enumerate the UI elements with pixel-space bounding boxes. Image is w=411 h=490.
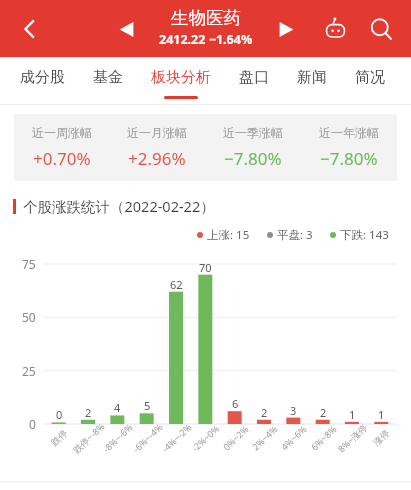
staticText: 近一月涨幅	[127, 125, 187, 140]
staticText: 近一季涨幅	[223, 125, 283, 140]
button[interactable]: 近一月涨幅	[109, 125, 205, 170]
button[interactable]: 成分股	[20, 57, 65, 105]
button[interactable]: 近一周涨幅	[14, 125, 109, 170]
staticText: 下跌: 143	[340, 227, 389, 243]
button[interactable]: 近一年涨幅	[301, 125, 397, 170]
staticText: −7.80%	[224, 147, 282, 170]
staticText: 涨停	[371, 427, 391, 448]
button[interactable]: 盘口	[239, 57, 269, 105]
button[interactable]: Next sector	[264, 7, 308, 51]
staticText: -8%~-6%	[100, 421, 135, 455]
staticText: 2412.22 −1.64%	[159, 31, 253, 48]
staticText: 75	[22, 256, 36, 272]
button[interactable]: 基金	[93, 57, 123, 105]
button[interactable]: 简况	[355, 57, 385, 105]
staticText: 2	[320, 405, 327, 420]
staticText: 2	[85, 405, 92, 420]
staticText: 2%~4%	[249, 423, 280, 453]
button[interactable]: 板块分析	[151, 57, 211, 105]
staticText: 2	[261, 405, 268, 420]
staticText: 4	[114, 400, 121, 415]
staticText: 生物医药	[171, 7, 241, 29]
button[interactable]: 新闻	[297, 57, 327, 105]
staticText: −7.80%	[320, 147, 378, 170]
staticText: 1	[378, 407, 385, 422]
staticText: 平盘: 3	[277, 227, 313, 243]
staticText: 8%~涨停	[335, 421, 369, 455]
staticText: 4%~6%	[278, 423, 309, 453]
staticText: 盘口	[239, 68, 269, 87]
staticText: 个股涨跌统计（2022-02-22）	[23, 196, 215, 216]
button[interactable]: Search	[359, 7, 403, 51]
staticText: 近一年涨幅	[319, 125, 379, 140]
staticText: 近一周涨幅	[32, 125, 92, 140]
button[interactable]: Back	[8, 7, 52, 51]
staticText: 5	[144, 398, 151, 413]
button[interactable]: Previous sector	[104, 7, 148, 51]
staticText: 跌停~-8%	[70, 420, 107, 455]
staticText: 成分股	[20, 68, 65, 87]
staticText: 0	[56, 407, 63, 422]
staticText: +2.96%	[128, 147, 186, 170]
staticText: 新闻	[297, 68, 327, 87]
staticText: 6%~8%	[308, 423, 339, 453]
staticText: 跌停	[49, 427, 69, 448]
staticText: 板块分析	[151, 68, 211, 87]
staticText: -2%~0%	[188, 422, 222, 454]
staticText: 简况	[355, 68, 385, 87]
button[interactable]: 近一季涨幅	[205, 125, 301, 170]
staticText: 25	[22, 363, 36, 379]
staticText: 0	[29, 416, 36, 432]
staticText: 1	[349, 407, 356, 422]
staticText: +0.70%	[33, 147, 91, 170]
staticText: 基金	[93, 68, 123, 87]
staticText: 0%~2%	[220, 423, 251, 453]
staticText: -4%~-2%	[159, 421, 194, 455]
staticText: 62	[170, 277, 183, 292]
staticText: 上涨: 15	[207, 227, 250, 243]
staticText: -6%~-4%	[130, 421, 165, 455]
staticText: 3	[290, 403, 297, 418]
staticText: 50	[22, 309, 36, 325]
staticText: 70	[199, 260, 212, 275]
staticText: 6	[232, 396, 239, 411]
button[interactable]: Assistant	[313, 7, 357, 51]
